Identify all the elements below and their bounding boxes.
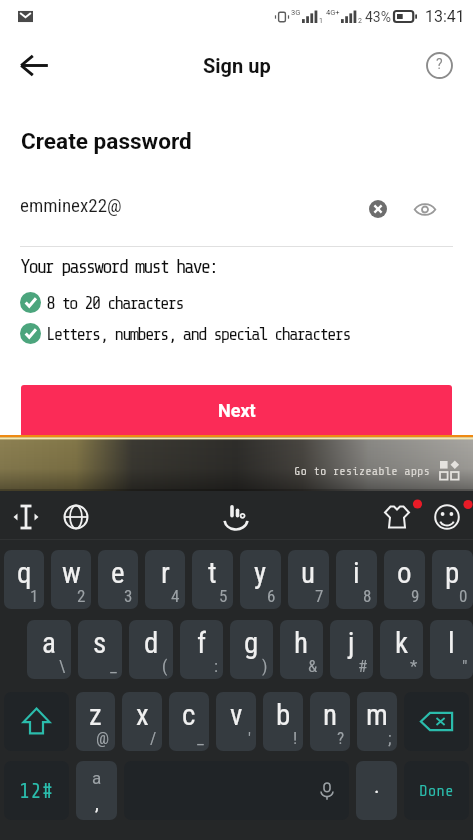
button[interactable]: h [280,620,323,679]
button[interactable]: Emoji [424,494,470,540]
staticText: ? [337,728,345,748]
staticText: Create password [21,128,192,154]
button[interactable]: 12# [4,761,69,820]
staticText: m [366,698,388,732]
button[interactable]: . [356,761,397,820]
button[interactable]: e [98,550,138,609]
staticText: 1 [30,586,39,606]
button[interactable]: Done [404,761,469,820]
button[interactable]: a [76,761,117,820]
staticText: j [348,626,355,660]
button[interactable]: j [330,620,373,679]
staticText: p [445,556,460,590]
staticText: 2 [77,586,86,606]
button[interactable]: f [180,620,223,679]
button[interactable]: Back [10,41,58,89]
staticText: q [17,556,32,590]
staticText: 4 [171,586,180,606]
staticText: w [62,556,81,590]
button[interactable]: i [336,550,377,609]
button[interactable]: Shift [4,692,69,751]
staticText: a [42,626,56,660]
staticText: Go to resizeable apps [294,464,431,478]
button[interactable]: k [380,620,423,679]
staticText: 2 [358,17,362,25]
staticText: ( [162,656,168,676]
staticText: * [410,656,418,676]
staticText: e [111,556,125,590]
button[interactable]: o [384,550,425,609]
staticText: x [136,698,149,732]
button[interactable]: x [122,692,162,751]
button[interactable]: p [432,550,473,609]
button[interactable]: l [430,620,473,679]
button[interactable]: r [145,550,185,609]
staticText: 3 [124,586,133,606]
button[interactable]: c [169,692,209,751]
staticText: & [308,656,318,676]
button[interactable]: Text editing [6,497,46,537]
button[interactable]: v [216,692,256,751]
staticText: 12# [19,779,54,803]
button[interactable]: w [51,550,91,609]
staticText: 1 [319,17,323,25]
staticText: Sign up [203,54,271,77]
button[interactable]: u [288,550,329,609]
staticText: 8 to 20 characters [46,293,183,314]
staticText: ; [388,728,392,748]
staticText: Your password must have: [20,255,217,278]
staticText: \ [59,656,66,676]
button[interactable]: Backspace [404,692,469,751]
staticText: @ [96,728,110,748]
button[interactable]: m [357,692,397,751]
staticText: . [374,774,380,799]
button[interactable]: a [27,620,71,679]
staticText: u [301,556,316,590]
button[interactable]: Change language [56,497,96,537]
staticText: ! [293,728,298,748]
staticText: : [214,656,218,676]
staticText: c [182,698,196,732]
button[interactable]: s [78,620,122,679]
button[interactable]: d [129,620,173,679]
staticText: _ [110,656,117,676]
staticText: Done [419,782,454,800]
staticText: d [144,626,159,660]
staticText: 4G+ [326,8,340,17]
staticText: i [353,556,360,590]
button[interactable]: Handwriting [216,497,256,537]
button[interactable]: Help [415,41,463,89]
button[interactable]: Space [124,761,349,820]
button[interactable]: z [76,692,115,751]
button[interactable]: t [192,550,233,609]
staticText: v [230,698,243,732]
staticText: a [92,768,102,788]
button[interactable]: Clear [359,190,397,228]
staticText: , [95,792,99,814]
button[interactable]: Keyboard theme [377,497,417,537]
staticText: Letters, numbers, and special characters [46,324,350,345]
button[interactable]: y [240,550,281,609]
staticText: t [208,556,217,590]
button[interactable]: q [4,550,44,609]
staticText: g [244,626,259,660]
staticText: _ [197,728,204,748]
staticText: emminex22@ [20,194,122,216]
button[interactable]: Go to resizeable apps [294,461,459,480]
button[interactable]: g [230,620,273,679]
staticText: k [395,626,409,660]
staticText: s [93,626,107,660]
staticText: # [358,656,368,676]
staticText: f [197,626,207,660]
button[interactable]: Show password [406,190,444,228]
staticText: / [150,728,157,748]
button[interactable]: n [310,692,350,751]
staticText: b [276,698,291,732]
staticText: " [462,656,468,676]
button[interactable]: Next [21,385,452,437]
button[interactable]: b [263,692,303,751]
staticText: o [397,556,412,590]
staticText: ) [262,656,268,676]
staticText: ' [248,728,251,748]
staticText: 7 [315,586,324,606]
